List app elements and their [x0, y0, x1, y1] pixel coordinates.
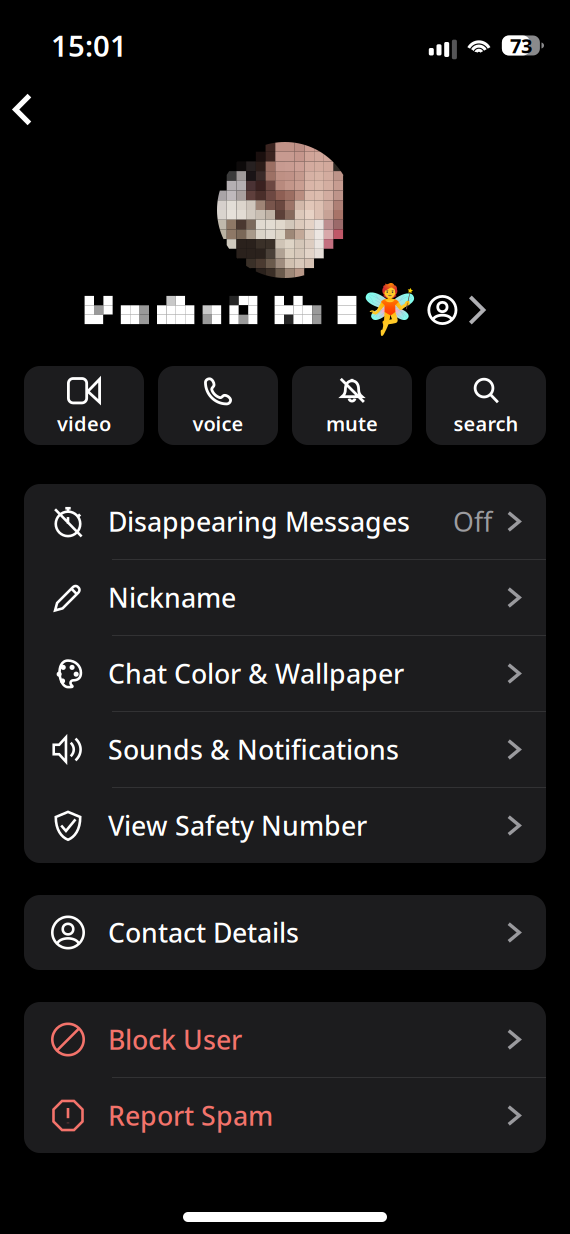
staticText: 73 [510, 32, 532, 59]
button[interactable]: voice [158, 366, 278, 445]
staticText: 15:01 [51, 26, 127, 65]
staticText: voice [192, 410, 243, 437]
button[interactable]: mute [292, 366, 412, 445]
button[interactable]: Nickname [24, 560, 546, 635]
button[interactable]: 🧚 [85, 291, 485, 329]
staticText: Nickname [108, 580, 236, 615]
button[interactable]: Report Spam [24, 1078, 546, 1153]
staticText: Disappearing Messages [108, 504, 410, 539]
staticText: Chat Color & Wallpaper [108, 656, 404, 691]
button[interactable]: Contact Details [24, 895, 546, 970]
button[interactable]: View Safety Number [24, 788, 546, 863]
staticText: Off [453, 504, 492, 539]
button[interactable]: video [24, 366, 144, 445]
staticText: View Safety Number [108, 808, 367, 843]
button[interactable]: Disappearing Messages [24, 484, 546, 559]
button[interactable]: Back [0, 70, 50, 129]
button[interactable]: Sounds & Notifications [24, 712, 546, 787]
staticText: Sounds & Notifications [108, 732, 399, 767]
staticText: search [453, 410, 518, 437]
staticText: 🧚 [360, 283, 420, 337]
staticText: video [57, 410, 111, 437]
button[interactable]: search [426, 366, 546, 445]
button[interactable]: Chat Color & Wallpaper [24, 636, 546, 711]
staticText: Contact Details [108, 915, 299, 950]
button[interactable]: Block User [24, 1002, 546, 1077]
staticText: mute [326, 410, 378, 437]
staticText: Report Spam [108, 1098, 273, 1133]
staticText: Block User [108, 1022, 242, 1057]
